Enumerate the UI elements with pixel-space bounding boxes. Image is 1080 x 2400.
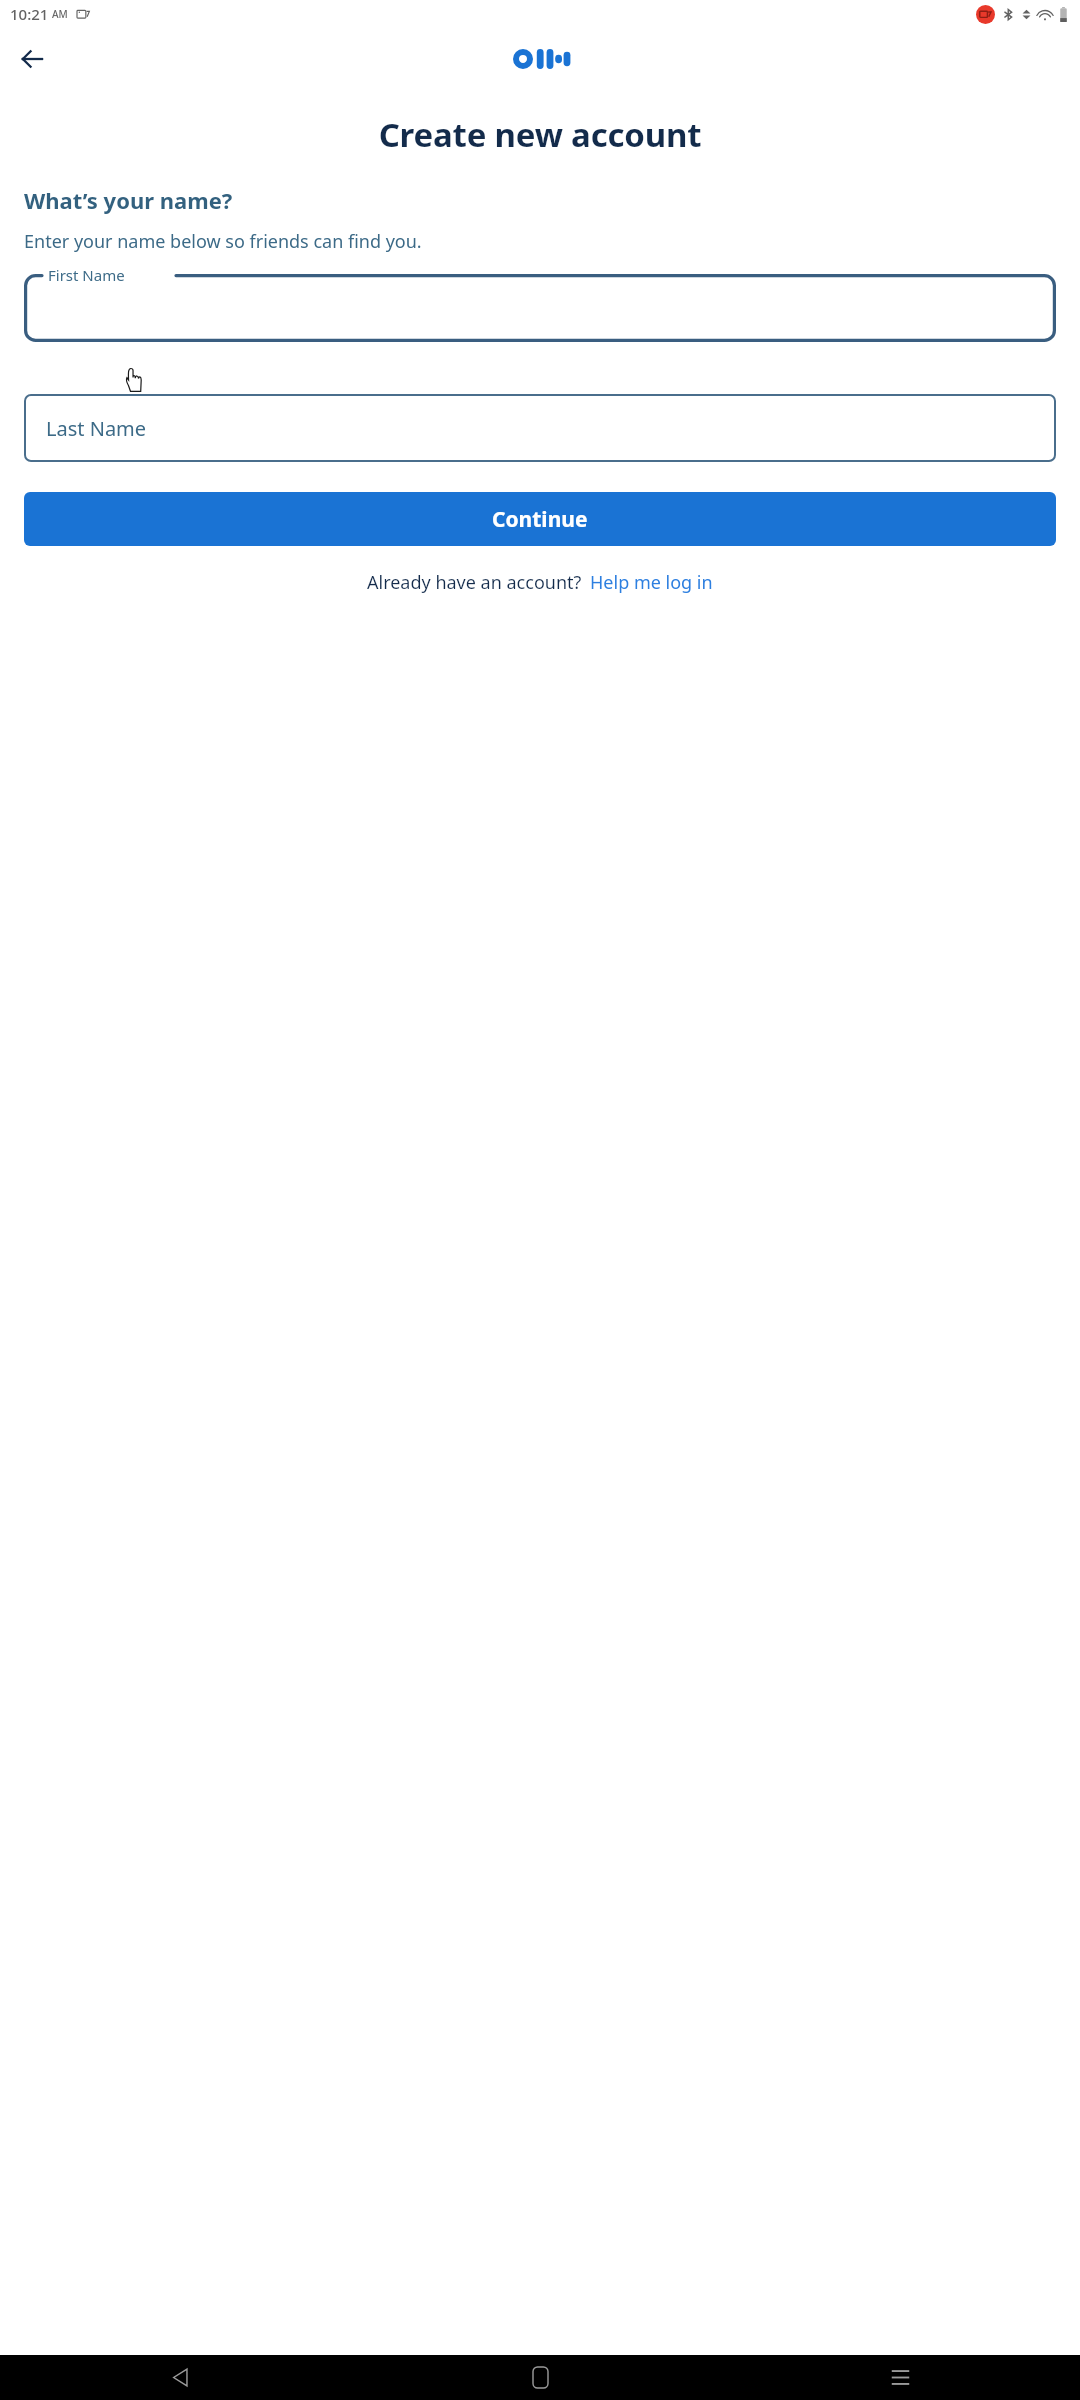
staticText: Already have an account? [367,570,582,595]
staticText: First Name [48,265,125,285]
staticText: Help me log in [590,570,713,595]
button[interactable]: Back [8,35,56,83]
button[interactable]: Back [0,2355,360,2400]
button[interactable] [24,274,1056,342]
button[interactable]: Continue [24,492,1056,546]
button[interactable]: Home [360,2355,720,2400]
staticText: AM [52,7,68,21]
button[interactable]: Recent apps [720,2355,1080,2400]
staticText: Last Name [46,415,147,442]
staticText: Create new account [0,112,1080,157]
staticText: 10:21 [10,4,49,24]
staticText: Enter your name below so friends can fin… [24,229,422,254]
button[interactable]: Help me log in [590,570,713,595]
staticText: Continue [492,505,588,534]
button[interactable]: Last Name [24,394,1056,462]
staticText: What’s your name? [24,185,233,215]
